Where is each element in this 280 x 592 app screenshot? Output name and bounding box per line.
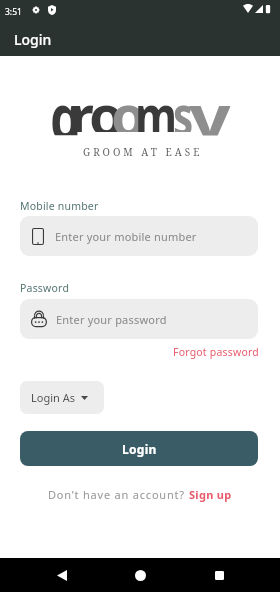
staticText: Login <box>122 441 157 457</box>
staticText: Don’t have an account? <box>48 487 189 502</box>
button[interactable]: Home <box>123 558 157 592</box>
button[interactable]: Enter your password <box>20 299 258 339</box>
staticText: Password <box>20 281 70 295</box>
button[interactable]: Sign up <box>189 487 232 502</box>
staticText: GROOM AT EASE <box>83 145 203 159</box>
button[interactable]: Login <box>20 431 258 466</box>
staticText: Enter your password <box>56 312 167 327</box>
staticText: r <box>70 76 95 132</box>
button[interactable]: Recent apps <box>202 558 236 592</box>
staticText: o <box>89 76 124 132</box>
staticText: s <box>173 76 194 132</box>
staticText: Enter your mobile number <box>55 229 197 244</box>
staticText: 3:51 <box>5 6 22 18</box>
staticText: Login As <box>31 390 75 405</box>
button[interactable]: Login As <box>20 381 104 414</box>
button[interactable]: Enter your mobile number <box>20 216 258 256</box>
staticText: Mobile number <box>20 199 99 213</box>
staticText: m <box>135 76 177 132</box>
staticText: o <box>111 76 146 132</box>
button[interactable]: Back <box>45 558 79 592</box>
staticText: Login <box>14 30 52 49</box>
staticText: g <box>50 73 82 135</box>
button[interactable]: Forgot password <box>173 345 259 359</box>
staticText: y <box>189 73 231 135</box>
